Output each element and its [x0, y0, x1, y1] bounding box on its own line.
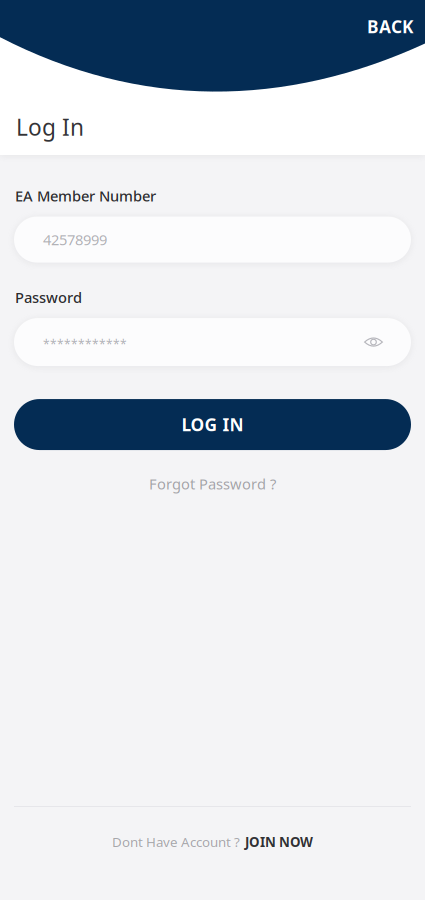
staticText: LOG IN	[181, 413, 243, 436]
staticText: 42578999	[43, 230, 107, 249]
staticText: Forgot Password ?	[149, 474, 276, 494]
staticText: Dont Have Account ?	[112, 833, 240, 851]
button[interactable]: Show password	[352, 324, 395, 361]
button[interactable]: LOG IN	[14, 399, 411, 450]
button[interactable]: BACK	[355, 6, 425, 47]
staticText: JOIN NOW	[245, 833, 313, 851]
staticText: BACK	[367, 15, 414, 38]
staticText: Log In	[16, 112, 84, 142]
button[interactable]: Forgot Password ?	[0, 467, 425, 501]
staticText: ************	[43, 336, 127, 352]
button[interactable]: Dont Have Account ?	[0, 823, 425, 861]
staticText: EA Member Number	[15, 186, 156, 206]
staticText: Password	[15, 288, 82, 307]
